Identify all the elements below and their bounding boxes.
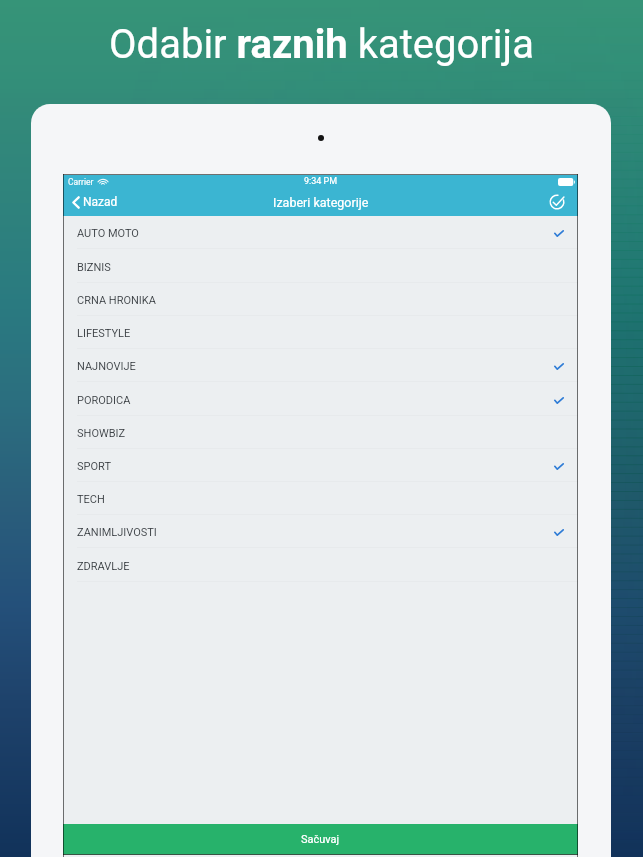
staticText: BIZNIS bbox=[77, 261, 111, 274]
staticText: Carrier bbox=[68, 177, 94, 187]
button[interactable]: Nazad bbox=[63, 190, 126, 214]
staticText: ZANIMLJIVOSTI bbox=[77, 526, 157, 539]
staticText: ZDRAVLJE bbox=[77, 560, 130, 573]
staticText: SPORT bbox=[77, 460, 111, 473]
button[interactable]: SHOWBIZ bbox=[63, 416, 578, 449]
staticText: AUTO MOTO bbox=[77, 227, 139, 240]
button[interactable]: CRNA HRONIKA bbox=[63, 283, 578, 316]
staticText: Nazad bbox=[83, 195, 118, 209]
staticText: Sačuvaj bbox=[301, 833, 340, 846]
button[interactable]: ZANIMLJIVOSTI bbox=[63, 515, 578, 548]
button[interactable]: Sačuvaj bbox=[63, 824, 578, 854]
button[interactable]: ZDRAVLJE bbox=[63, 549, 578, 582]
staticText: TECH bbox=[77, 493, 105, 506]
button[interactable]: BIZNIS bbox=[63, 250, 578, 283]
staticText: NAJNOVIJE bbox=[77, 360, 136, 373]
staticText: 9:34 PM bbox=[304, 176, 338, 187]
button[interactable]: LIFESTYLE bbox=[63, 316, 578, 349]
button[interactable]: AUTO MOTO bbox=[63, 216, 578, 249]
staticText: Odabir raznih kategorija bbox=[0, 21, 643, 68]
button[interactable]: TECH bbox=[63, 482, 578, 515]
button[interactable]: PORODICA bbox=[63, 383, 578, 416]
staticText: SHOWBIZ bbox=[77, 427, 126, 440]
staticText: Izaberi kategorije bbox=[273, 195, 369, 210]
staticText: PORODICA bbox=[77, 394, 131, 407]
staticText: CRNA HRONIKA bbox=[77, 294, 156, 307]
button[interactable]: NAJNOVIJE bbox=[63, 349, 578, 382]
button[interactable]: Select all categories bbox=[544, 189, 578, 215]
staticText: LIFESTYLE bbox=[77, 327, 131, 340]
button[interactable]: SPORT bbox=[63, 449, 578, 482]
